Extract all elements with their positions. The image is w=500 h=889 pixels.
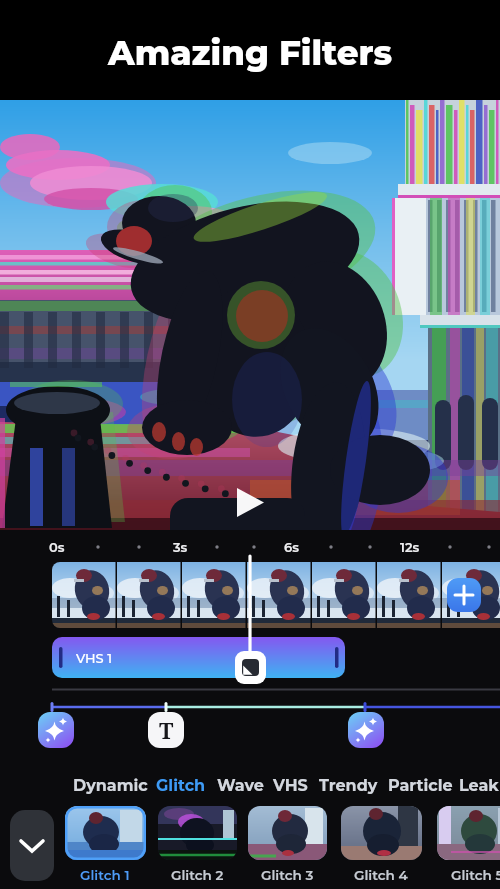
staticText: 0s xyxy=(49,539,65,555)
button[interactable] xyxy=(348,712,384,748)
button[interactable] xyxy=(158,806,237,860)
staticText: VHS xyxy=(273,776,308,796)
staticText: Amazing Filters xyxy=(108,32,393,73)
staticText: Wave xyxy=(217,776,264,796)
staticText: Particle xyxy=(388,776,453,796)
button[interactable]: Wave xyxy=(208,773,272,799)
button[interactable] xyxy=(52,562,500,628)
staticText: Glitch xyxy=(156,776,206,796)
button[interactable] xyxy=(341,806,422,860)
button[interactable]: VHS 1 xyxy=(52,637,345,678)
staticText: 6s xyxy=(284,539,299,555)
button[interactable] xyxy=(10,810,54,881)
staticText: Glitch 4 xyxy=(354,867,408,883)
staticText: Glitch 1 xyxy=(80,867,130,883)
staticText: Trendy xyxy=(319,776,378,796)
button[interactable]: Glitch xyxy=(146,773,216,799)
staticText: 3s xyxy=(173,539,188,555)
staticText: Dynamic xyxy=(73,776,148,796)
staticText: Glitch 5 xyxy=(451,867,500,883)
button[interactable] xyxy=(65,806,146,860)
button[interactable]: T xyxy=(148,712,184,748)
button[interactable] xyxy=(447,578,481,612)
button[interactable]: Leak xyxy=(451,773,500,799)
button[interactable]: Particle xyxy=(377,773,463,799)
staticText: T xyxy=(159,715,174,745)
button[interactable]: Dynamic xyxy=(55,773,165,799)
button[interactable] xyxy=(437,806,500,860)
button[interactable]: Trendy xyxy=(309,773,387,799)
staticText: Glitch 3 xyxy=(261,867,314,883)
staticText: Glitch 2 xyxy=(171,867,224,883)
staticText: Leak xyxy=(459,776,499,796)
button[interactable] xyxy=(248,806,327,860)
staticText: VHS 1 xyxy=(76,650,112,666)
button[interactable] xyxy=(38,712,74,748)
button[interactable]: VHS xyxy=(263,773,317,799)
staticText: 12s xyxy=(400,539,420,555)
